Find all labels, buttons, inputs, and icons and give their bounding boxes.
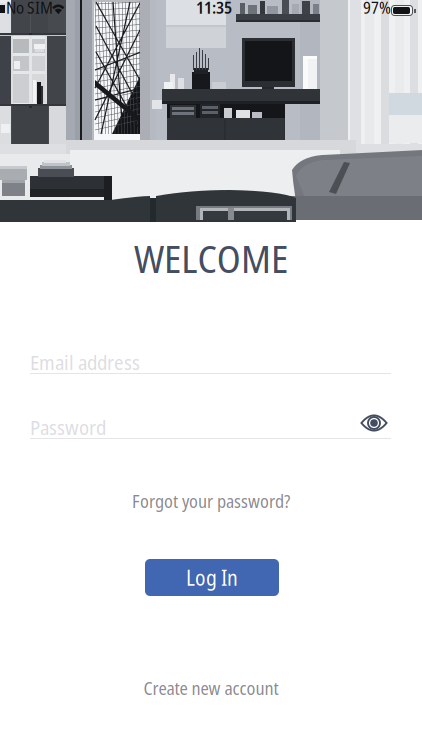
- staticText: Password: [30, 413, 106, 441]
- staticText: WELCOME: [134, 232, 288, 284]
- button[interactable]: Show password: [357, 410, 391, 436]
- staticText: Email address: [30, 348, 140, 376]
- button[interactable]: Log In: [145, 559, 279, 596]
- button[interactable]: Forgot your password?: [111, 484, 311, 518]
- staticText: Create new account: [143, 676, 278, 700]
- staticText: 11:35: [196, 0, 232, 19]
- staticText: 97%: [363, 0, 391, 19]
- button[interactable]: Create new account: [111, 672, 311, 704]
- staticText: Forgot your password?: [132, 489, 290, 513]
- staticText: Log In: [186, 563, 238, 592]
- staticText: No SIM: [6, 0, 53, 19]
